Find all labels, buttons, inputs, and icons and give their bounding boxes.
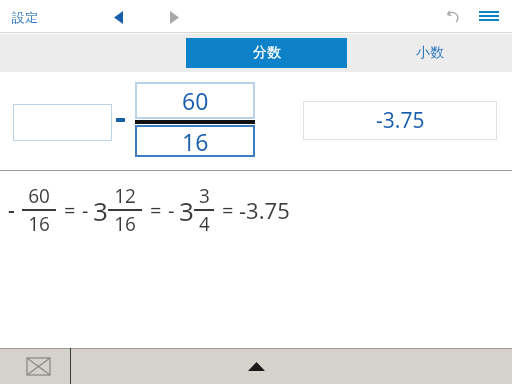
- staticText: 分数: [253, 44, 281, 62]
- button[interactable]: 16: [135, 125, 255, 157]
- staticText: -: [82, 197, 89, 224]
- button[interactable]: Previous: [104, 3, 132, 31]
- staticText: 60: [182, 85, 209, 116]
- button[interactable]: Expand: [234, 348, 278, 384]
- button[interactable]: Mail: [20, 348, 56, 384]
- staticText: -: [8, 196, 15, 225]
- staticText: 12: [114, 183, 136, 209]
- button[interactable]: 小数: [347, 34, 512, 72]
- staticText: 4: [199, 211, 210, 237]
- button[interactable]: 60: [135, 82, 255, 119]
- staticText: =: [150, 197, 162, 224]
- staticText: =: [222, 197, 234, 224]
- staticText: 16: [182, 126, 209, 157]
- staticText: -: [168, 197, 175, 224]
- button[interactable]: Next: [160, 3, 188, 31]
- button[interactable]: 分数: [186, 38, 347, 68]
- staticText: -3.75: [239, 195, 290, 225]
- staticText: 3: [179, 193, 194, 228]
- staticText: 60: [28, 183, 50, 209]
- button[interactable]: -3.75: [303, 101, 497, 140]
- button[interactable]: Undo: [438, 2, 468, 32]
- staticText: 設定: [12, 9, 38, 25]
- staticText: =: [64, 197, 76, 224]
- button[interactable]: Menu: [474, 2, 504, 32]
- staticText: 16: [114, 211, 136, 237]
- staticText: 3: [199, 183, 210, 209]
- staticText: -3.75: [376, 106, 425, 135]
- staticText: 小数: [416, 44, 444, 62]
- button[interactable]: [13, 104, 112, 141]
- staticText: 3: [93, 193, 108, 228]
- staticText: 16: [28, 211, 50, 237]
- button[interactable]: 設定: [8, 5, 42, 29]
